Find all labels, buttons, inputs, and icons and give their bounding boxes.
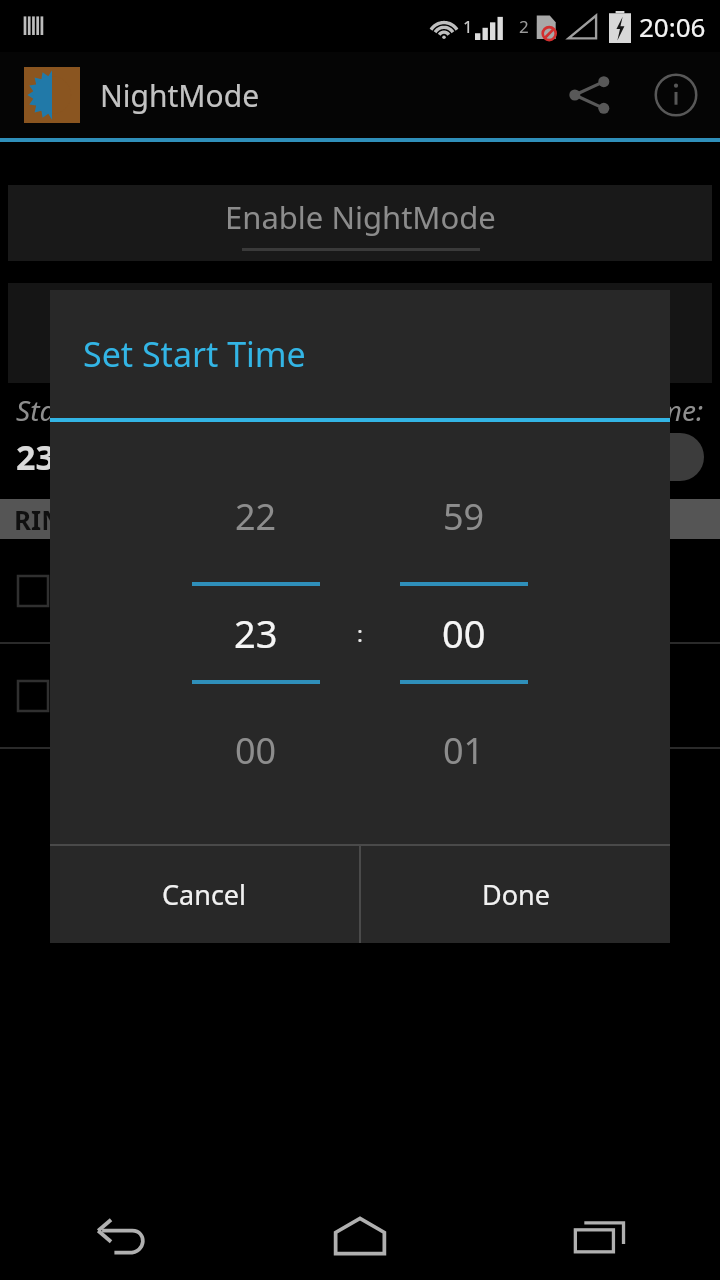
button[interactable]: 22 [168, 473, 344, 793]
button[interactable]: Enable NightMode [8, 185, 712, 261]
button[interactable]: Recents [480, 1192, 720, 1280]
staticText: 01 [443, 726, 485, 775]
staticText: Start time: [16, 391, 146, 429]
button[interactable]: 59 [376, 473, 552, 793]
staticText: 2 [519, 15, 529, 38]
staticText: 00 [442, 607, 486, 659]
staticText: Set Start Time [83, 331, 306, 377]
button[interactable]: Cancel [50, 846, 359, 943]
button[interactable]: Silent mode [0, 539, 720, 642]
button[interactable]: Toggle [634, 433, 704, 481]
staticText: Enable NightMode [225, 196, 496, 238]
staticText: 23:00 [16, 434, 104, 480]
staticText: Done [482, 876, 550, 913]
staticText: 23 [234, 607, 278, 659]
staticText: 20:06 [639, 9, 706, 44]
staticText: Silent mode [68, 573, 214, 608]
staticText: 22 [235, 492, 277, 541]
button[interactable]: Share [548, 52, 632, 138]
button[interactable]: Done [361, 846, 670, 943]
staticText: Cancel [162, 876, 247, 913]
button[interactable]: Vibrate [0, 644, 720, 747]
staticText: NightMode [100, 75, 260, 116]
staticText: End time: [587, 391, 704, 429]
button[interactable]: Back [0, 1192, 240, 1280]
staticText: : [357, 618, 363, 648]
staticText: 59 [443, 492, 485, 541]
button[interactable]: Home [240, 1192, 480, 1280]
staticText: 00 [235, 726, 277, 775]
button[interactable]: About [632, 52, 720, 138]
staticText: RINGER [14, 502, 113, 537]
staticText: 1 [463, 15, 473, 38]
